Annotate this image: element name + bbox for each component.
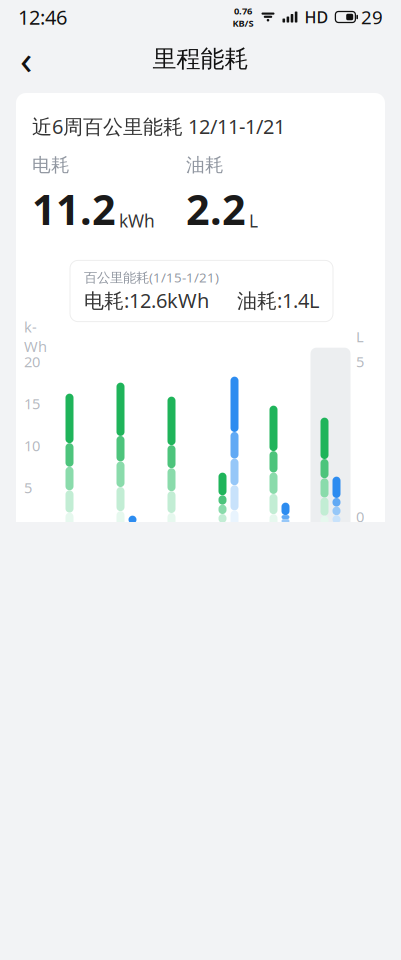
button[interactable]: Back <box>4 37 48 81</box>
staticText: 0.76 <box>234 5 252 17</box>
staticText: 15 <box>24 394 40 413</box>
staticText: 里程能耗 <box>152 44 248 74</box>
staticText: 12/11-1/21 <box>188 113 285 140</box>
staticText: L <box>249 209 258 232</box>
staticText: 2.2 <box>186 181 246 236</box>
staticText: 近6周百公里能耗 <box>32 113 183 140</box>
staticText: L <box>356 327 364 346</box>
staticText: ‹ <box>20 32 32 85</box>
staticText: 0 <box>24 520 32 539</box>
staticText: 百公里能耗(1/15-1/21) <box>84 268 219 286</box>
staticText: 电耗:12.6kWh <box>84 287 209 314</box>
staticText: KB/S <box>232 17 253 29</box>
staticText: HD <box>304 6 328 28</box>
staticText: 0 <box>356 507 364 526</box>
staticText: kWh <box>119 209 155 232</box>
staticText: 5 <box>356 352 364 371</box>
staticText: 12:46 <box>18 4 67 30</box>
staticText: 11.2 <box>32 181 116 236</box>
staticText: 20 <box>24 352 40 371</box>
staticText: kWh <box>24 317 47 356</box>
staticText: 29 <box>361 5 383 29</box>
staticText: 电耗 <box>32 154 70 176</box>
staticText: 10 <box>24 436 40 455</box>
staticText: 5 <box>24 478 32 497</box>
staticText: 油耗 <box>186 154 224 176</box>
staticText: 油耗:1.4L <box>237 287 319 314</box>
